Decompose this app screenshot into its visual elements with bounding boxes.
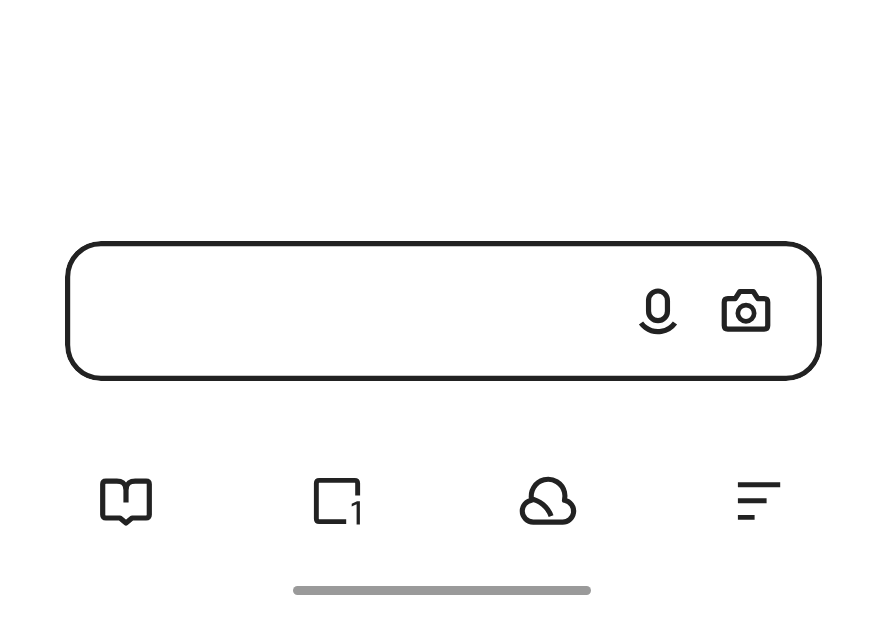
button[interactable]: Home: [92, 467, 160, 535]
button[interactable]: Discover: [514, 467, 582, 535]
button[interactable]: Switch or open tabs, 1 tab: [303, 467, 371, 535]
button[interactable]: Customise and control: [725, 467, 793, 535]
button[interactable]: Search with your camera: [712, 277, 780, 345]
button[interactable]: Search or type web address: [65, 241, 822, 381]
button[interactable]: Search by voice: [624, 277, 692, 345]
